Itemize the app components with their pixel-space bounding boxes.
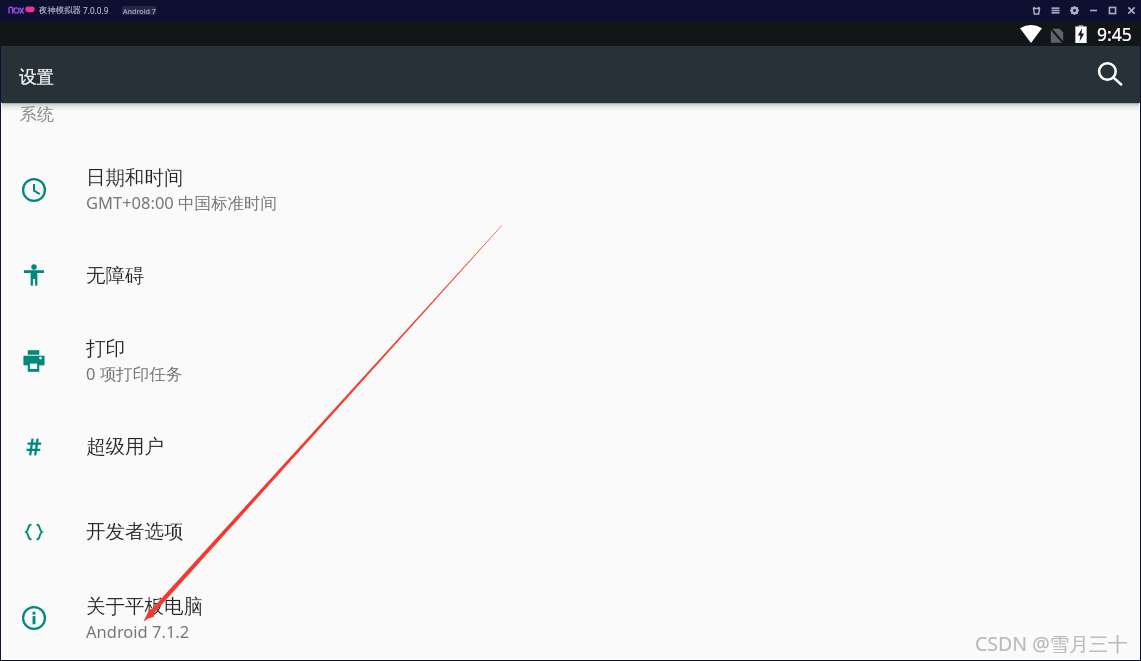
button[interactable]: 开发者选项 bbox=[2, 489, 1139, 574]
staticText: 系统 bbox=[20, 104, 54, 125]
button[interactable]: 超级用户 bbox=[2, 404, 1139, 489]
staticText: Android 7.1.2 bbox=[86, 620, 190, 642]
button[interactable]: Settings bbox=[1065, 0, 1084, 22]
staticText: 夜神模拟器 bbox=[39, 5, 81, 16]
staticText: 开发者选项 bbox=[86, 519, 184, 544]
staticText: 9:45 bbox=[1097, 22, 1132, 46]
staticText: Android 7 bbox=[123, 6, 156, 15]
button[interactable]: Menu bbox=[1046, 0, 1065, 22]
button[interactable]: 日期和时间 bbox=[2, 147, 1139, 232]
button[interactable]: Close bbox=[1122, 0, 1141, 22]
staticText: 0 项打印任务 bbox=[86, 362, 183, 385]
staticText: 日期和时间 bbox=[86, 165, 184, 190]
staticText: 无障碍 bbox=[86, 263, 145, 288]
staticText: CSDN @雪月三十 bbox=[975, 630, 1128, 657]
button[interactable]: Minimize bbox=[1084, 0, 1103, 22]
staticText: 设置 bbox=[19, 66, 54, 88]
button[interactable]: 打印 bbox=[2, 318, 1139, 403]
staticText: 关于平板电脑 bbox=[86, 594, 203, 619]
button[interactable]: 无障碍 bbox=[2, 233, 1139, 318]
button[interactable]: Search bbox=[1065, 74, 1109, 118]
staticText: GMT+08:00 中国标准时间 bbox=[86, 191, 278, 214]
staticText: 超级用户 bbox=[86, 434, 164, 459]
staticText: 打印 bbox=[86, 336, 125, 361]
staticText: 7.0.0.9 bbox=[83, 5, 109, 16]
button[interactable]: Maximize bbox=[1103, 0, 1122, 22]
button[interactable]: 关于平板电脑 bbox=[2, 575, 1139, 660]
button[interactable]: Home bbox=[1027, 0, 1046, 22]
